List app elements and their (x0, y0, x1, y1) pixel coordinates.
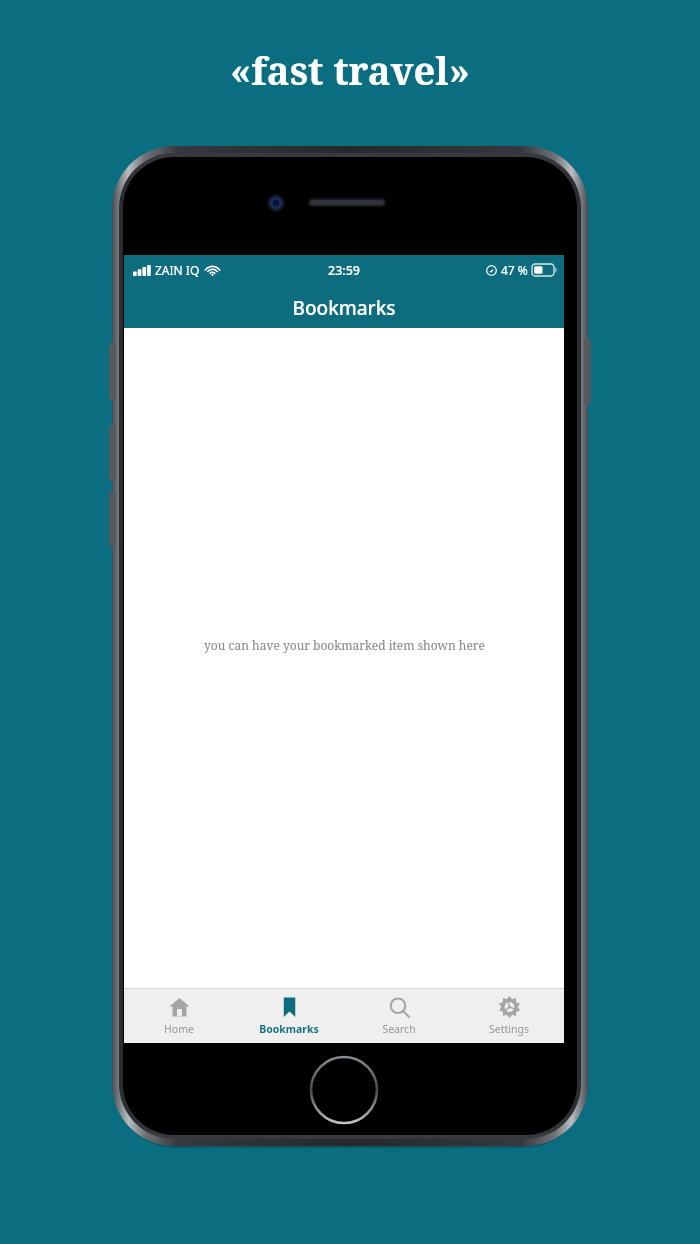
staticText: Bookmarks (259, 1022, 319, 1036)
staticText: Bookmarks (124, 295, 564, 321)
staticText: 23:59 (328, 262, 361, 279)
button[interactable]: Search (344, 989, 454, 1043)
button[interactable]: Home (124, 989, 234, 1043)
staticText: Settings (489, 1022, 529, 1036)
button[interactable]: Settings (454, 989, 564, 1043)
staticText: ZAIN IQ (155, 262, 200, 278)
staticText: Search (382, 1022, 416, 1036)
staticText: «fast travel» (0, 44, 700, 96)
staticText: you can have your bookmarked item shown … (204, 637, 485, 653)
staticText: 47 % (501, 262, 528, 278)
staticText: Home (164, 1022, 194, 1036)
button[interactable]: Bookmarks (234, 989, 344, 1043)
